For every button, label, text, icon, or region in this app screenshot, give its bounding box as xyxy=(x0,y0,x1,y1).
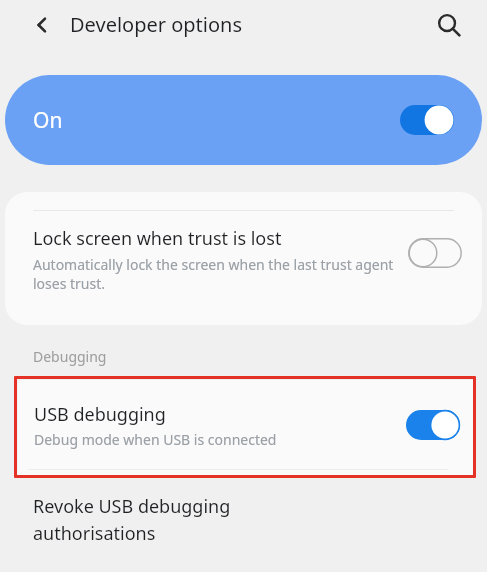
staticText: Debug mode when USB is connected xyxy=(34,430,277,449)
button[interactable]: Back xyxy=(22,4,64,46)
staticText: Developer options xyxy=(70,11,243,38)
staticText: Lock screen when trust is lost xyxy=(33,226,282,251)
staticText: USB debugging xyxy=(34,402,166,427)
staticText: Debugging xyxy=(33,347,107,366)
button[interactable]: Lock screen when trust is lost xyxy=(5,192,482,325)
button[interactable]: Revoke USB debugging authorisations xyxy=(0,486,487,572)
button[interactable]: Toggle xyxy=(408,238,462,268)
button[interactable]: Search xyxy=(427,3,471,47)
staticText: Automatically lock the screen when the l… xyxy=(33,255,398,293)
button[interactable]: On xyxy=(5,75,482,165)
button[interactable]: Toggle xyxy=(406,410,460,440)
button[interactable]: Toggle xyxy=(400,105,454,135)
button[interactable]: USB debugging xyxy=(18,380,476,478)
staticText: Revoke USB debugging authorisations xyxy=(33,494,333,545)
staticText: On xyxy=(33,106,63,135)
